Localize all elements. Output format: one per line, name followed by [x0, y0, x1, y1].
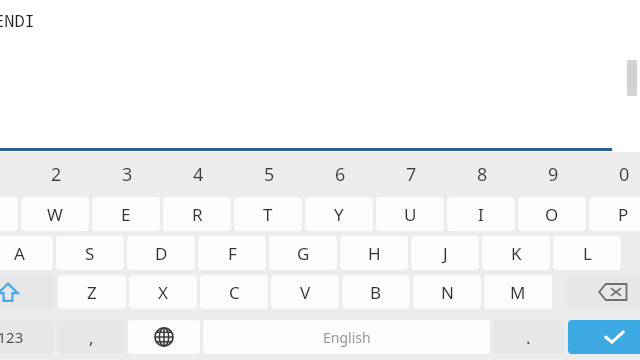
- staticText: N: [441, 281, 454, 304]
- button[interactable]: J: [411, 236, 479, 270]
- button[interactable]: 7: [376, 155, 446, 193]
- button[interactable]: C: [200, 275, 268, 309]
- staticText: Z: [87, 281, 97, 304]
- button[interactable]: 8: [447, 155, 517, 193]
- staticText: Y: [334, 203, 344, 226]
- staticText: X: [158, 281, 168, 304]
- staticText: 0: [619, 162, 630, 187]
- staticText: B: [370, 281, 382, 304]
- button[interactable]: Enter: [568, 320, 640, 354]
- button[interactable]: G: [269, 236, 337, 270]
- staticText: L: [583, 242, 592, 265]
- button[interactable]: R: [163, 197, 231, 231]
- staticText: A: [14, 242, 25, 265]
- button[interactable]: 9: [518, 155, 588, 193]
- staticText: V: [300, 281, 311, 304]
- staticText: G: [297, 242, 310, 265]
- button[interactable]: L: [553, 236, 621, 270]
- button[interactable]: ?123: [0, 320, 54, 354]
- staticText: ?123: [0, 327, 24, 347]
- staticText: W: [47, 203, 63, 226]
- button[interactable]: D: [127, 236, 195, 270]
- staticText: F: [228, 242, 237, 265]
- staticText: T: [263, 203, 273, 226]
- button[interactable]: Backspace: [565, 275, 640, 309]
- button[interactable]: 0: [589, 155, 640, 193]
- staticText: 5: [264, 162, 275, 187]
- staticText: 8: [477, 162, 488, 187]
- button[interactable]: M: [484, 275, 552, 309]
- staticText: 4: [193, 162, 204, 187]
- staticText: S: [85, 242, 95, 265]
- button[interactable]: V: [271, 275, 339, 309]
- button[interactable]: N: [413, 275, 481, 309]
- button[interactable]: O: [518, 197, 586, 231]
- button[interactable]: 6: [305, 155, 375, 193]
- button[interactable]: 5: [234, 155, 304, 193]
- staticText: ,: [89, 326, 94, 349]
- staticText: C: [229, 281, 240, 304]
- staticText: 3: [122, 162, 133, 187]
- button[interactable]: X: [129, 275, 197, 309]
- button[interactable]: W: [21, 197, 89, 231]
- staticText: U: [404, 203, 417, 226]
- staticText: M: [510, 281, 526, 304]
- button[interactable]: Shift: [0, 275, 55, 309]
- button[interactable]: B: [342, 275, 410, 309]
- staticText: E: [121, 203, 131, 226]
- button[interactable]: .: [493, 320, 564, 354]
- button[interactable]: A: [0, 236, 53, 270]
- button[interactable]: English: [203, 320, 490, 354]
- button[interactable]: H: [340, 236, 408, 270]
- button[interactable]: Z: [58, 275, 126, 309]
- button[interactable]: 3: [92, 155, 162, 193]
- staticText: H: [368, 242, 381, 265]
- button[interactable]: 4: [163, 155, 233, 193]
- button[interactable]: 2: [21, 155, 91, 193]
- staticText: R: [192, 203, 203, 226]
- button[interactable]: P: [589, 197, 640, 231]
- staticText: 2: [51, 162, 62, 187]
- button[interactable]: E: [92, 197, 160, 231]
- staticText: D: [155, 242, 168, 265]
- staticText: 9: [548, 162, 559, 187]
- button[interactable]: U: [376, 197, 444, 231]
- button[interactable]: T: [234, 197, 302, 231]
- staticText: .: [526, 326, 531, 349]
- staticText: K: [511, 242, 522, 265]
- staticText: P: [618, 203, 629, 226]
- button[interactable]: K: [482, 236, 550, 270]
- staticText: O: [545, 203, 559, 226]
- button[interactable]: S: [56, 236, 124, 270]
- staticText: 7: [406, 162, 417, 187]
- staticText: English: [323, 328, 371, 347]
- button[interactable]: I: [447, 197, 515, 231]
- button[interactable]: Y: [305, 197, 373, 231]
- staticText: I: [478, 203, 484, 226]
- button[interactable]: Change language: [128, 320, 200, 354]
- staticText: J: [443, 242, 448, 265]
- staticText: 6: [335, 162, 346, 187]
- button[interactable]: ,: [57, 320, 125, 354]
- staticText: ENDI: [0, 9, 35, 32]
- button[interactable]: F: [198, 236, 266, 270]
